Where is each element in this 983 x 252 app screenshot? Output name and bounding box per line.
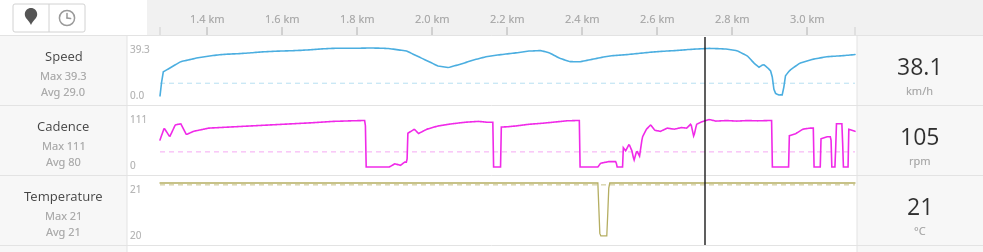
staticText: km/h	[906, 83, 934, 98]
staticText: 2.8 km	[715, 11, 750, 26]
button[interactable]	[0, 106, 983, 176]
staticText: 1.6 km	[265, 11, 300, 26]
staticText: 2.0 km	[415, 11, 450, 26]
staticText: rpm	[909, 153, 931, 168]
staticText: Max 21	[45, 208, 83, 223]
staticText: 21	[907, 190, 934, 221]
staticText: °C	[914, 223, 926, 238]
staticText: 2.2 km	[490, 11, 525, 26]
staticText: Cadence	[37, 117, 90, 135]
staticText: Avg 21	[46, 224, 81, 239]
staticText: 20	[130, 228, 142, 242]
staticText: Speed	[45, 47, 83, 65]
staticText: 2.4 km	[565, 11, 600, 26]
staticText: Temperature	[24, 187, 103, 205]
staticText: 39.3	[130, 42, 150, 56]
staticText: 1.4 km	[190, 11, 225, 26]
staticText: 105	[900, 120, 940, 151]
staticText: 2.6 km	[640, 11, 675, 26]
staticText: Max 39.3	[40, 68, 87, 83]
staticText: 0.0	[130, 88, 145, 102]
staticText: 1.8 km	[340, 11, 375, 26]
button[interactable]: Show time axis	[49, 4, 85, 32]
staticText: 0	[130, 158, 136, 172]
button[interactable]: Show distance axis	[13, 4, 49, 32]
staticText: 3.0 km	[790, 11, 825, 26]
button[interactable]	[0, 176, 983, 246]
staticText: 21	[130, 182, 142, 196]
staticText: Max 111	[42, 138, 86, 153]
staticText: 111	[130, 112, 148, 126]
staticText: Avg 29.0	[41, 84, 86, 99]
button[interactable]	[0, 36, 983, 106]
staticText: 38.1	[897, 50, 943, 81]
staticText: Avg 80	[46, 154, 81, 169]
